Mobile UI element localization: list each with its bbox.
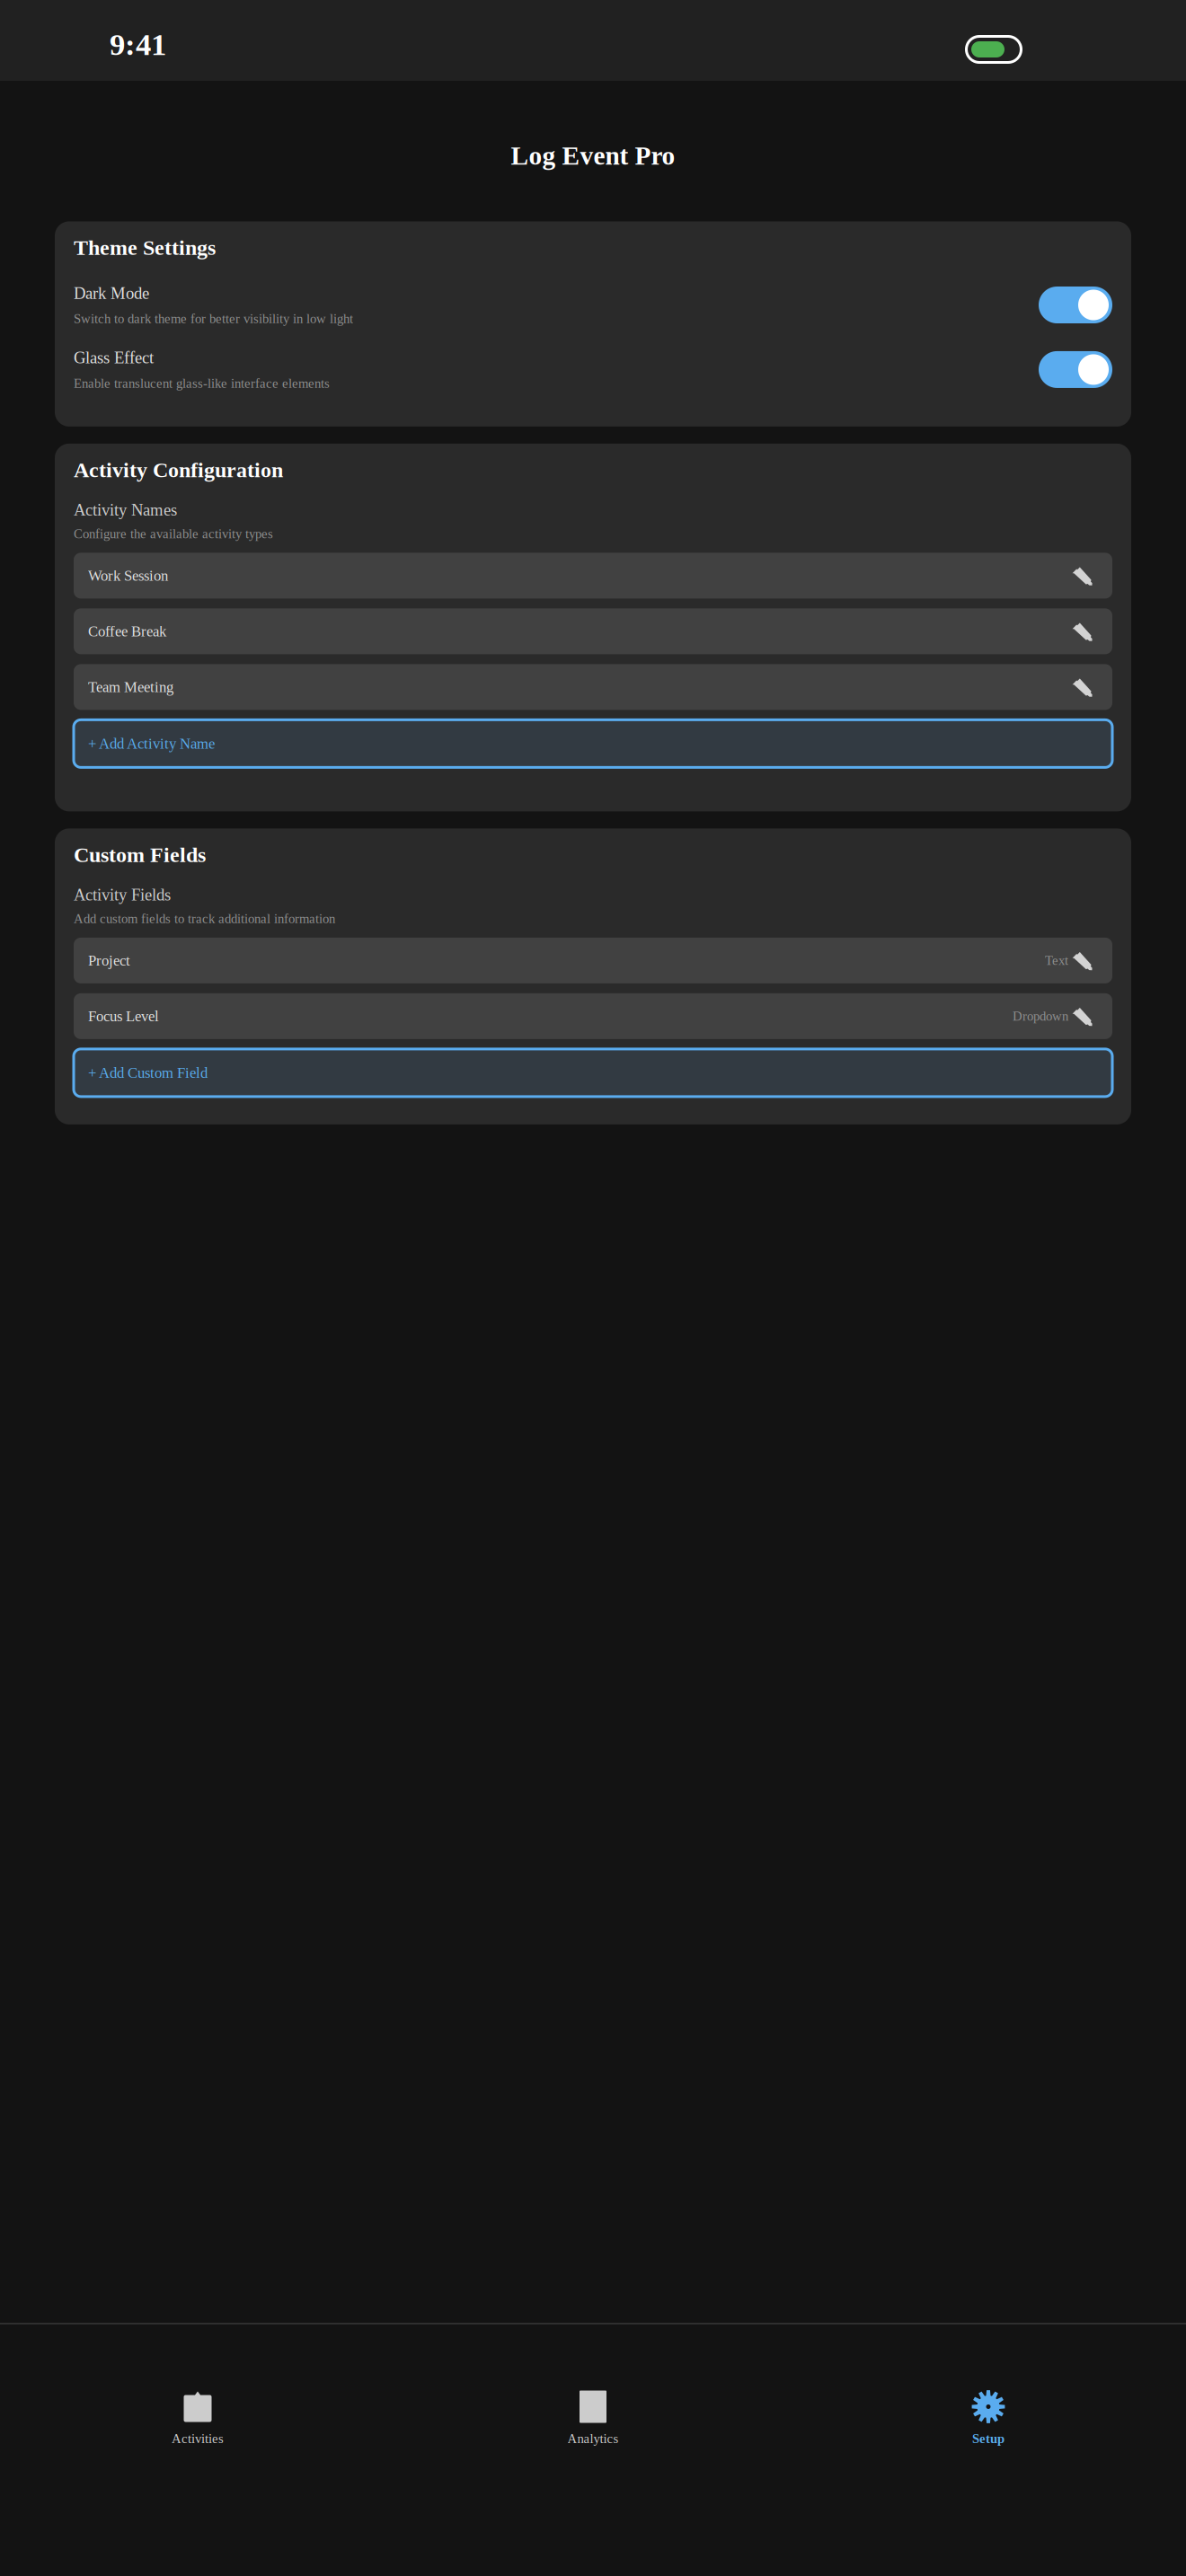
staticText: Add custom fields to track additional in…	[74, 911, 335, 926]
staticText: Dropdown	[1013, 1009, 1068, 1023]
staticText: Analytics	[567, 2431, 619, 2446]
button[interactable]: Analytics	[395, 2390, 791, 2446]
staticText: Activities	[172, 2431, 224, 2446]
staticText: Activity Configuration	[74, 458, 283, 482]
staticText: Activity Fields	[74, 886, 171, 904]
button[interactable]: + Add Activity Name	[74, 720, 1112, 767]
button[interactable]: Focus Level	[74, 993, 1112, 1039]
staticText: Log Event Pro	[511, 141, 675, 170]
button[interactable]: Team Meeting	[74, 664, 1112, 710]
staticText: Switch to dark theme for better visibili…	[74, 311, 353, 326]
button[interactable]: Toggle	[1039, 351, 1112, 388]
staticText: Coffee Break	[88, 623, 166, 640]
staticText: Activity Names	[74, 501, 177, 519]
staticText: Project	[88, 952, 130, 969]
staticText: Work Session	[88, 567, 168, 584]
staticText: Custom Fields	[74, 843, 206, 867]
button[interactable]: Setup	[791, 2390, 1186, 2446]
button[interactable]: Project	[74, 938, 1112, 983]
staticText: Configure the available activity types	[74, 526, 273, 541]
button[interactable]: + Add Custom Field	[74, 1049, 1112, 1097]
staticText: Team Meeting	[88, 679, 173, 695]
staticText: Dark Mode	[74, 284, 149, 303]
staticText: Focus Level	[88, 1008, 159, 1025]
button[interactable]: Coffee Break	[74, 608, 1112, 654]
button[interactable]: Dark Mode	[74, 284, 1112, 326]
staticText: Theme Settings	[74, 236, 216, 260]
staticText: Glass Effect	[74, 348, 154, 367]
button[interactable]: Work Session	[74, 553, 1112, 599]
staticText: + Add Custom Field	[88, 1065, 208, 1081]
staticText: + Add Activity Name	[88, 735, 215, 752]
button[interactable]: Glass Effect	[74, 348, 1112, 391]
staticText: Setup	[972, 2431, 1005, 2446]
button[interactable]: Toggle	[1039, 287, 1112, 323]
staticText: 9:41	[110, 27, 166, 62]
button[interactable]: Activities	[0, 2390, 395, 2446]
staticText: Text	[1045, 953, 1068, 968]
staticText: Enable translucent glass-like interface …	[74, 376, 330, 391]
